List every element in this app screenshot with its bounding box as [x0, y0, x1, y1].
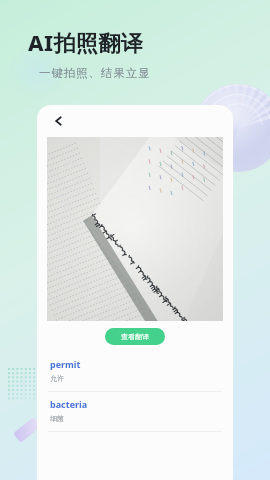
- button[interactable]: permit: [37, 352, 233, 392]
- staticText: AI拍照翻译: [28, 27, 144, 57]
- staticText: 一键拍照、结果立显: [39, 66, 151, 80]
- staticText: 细菌: [50, 414, 64, 423]
- button[interactable]: Captured photo: [47, 137, 223, 321]
- button[interactable]: Back: [48, 112, 66, 130]
- staticText: 查看翻译: [121, 332, 149, 341]
- button[interactable]: bacteria: [37, 392, 233, 432]
- button[interactable]: 查看翻译: [105, 328, 165, 345]
- staticText: bacteria: [50, 398, 88, 410]
- staticText: permit: [50, 358, 81, 370]
- staticText: 允许: [50, 374, 64, 383]
